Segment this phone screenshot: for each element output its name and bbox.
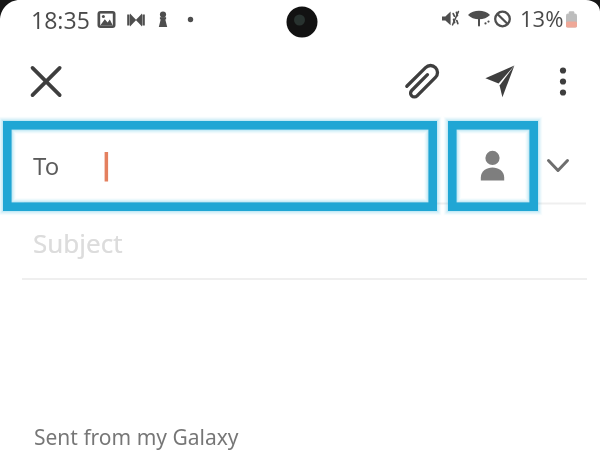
staticText: 18:35 xyxy=(31,4,90,35)
staticText: To xyxy=(33,149,60,182)
button[interactable] xyxy=(0,212,600,278)
button[interactable]: Add from contacts xyxy=(448,121,538,211)
staticText: 13% xyxy=(520,3,564,33)
button[interactable]: Attach file xyxy=(398,58,446,106)
button[interactable]: Send xyxy=(476,58,524,106)
button[interactable] xyxy=(3,121,437,211)
staticText: Subject xyxy=(33,225,123,260)
button[interactable]: Close xyxy=(22,58,70,106)
button[interactable]: Show Cc and Bcc xyxy=(540,145,580,185)
button[interactable] xyxy=(0,280,600,459)
staticText: Sent from my Galaxy xyxy=(34,423,239,452)
button[interactable]: More options xyxy=(539,58,587,106)
